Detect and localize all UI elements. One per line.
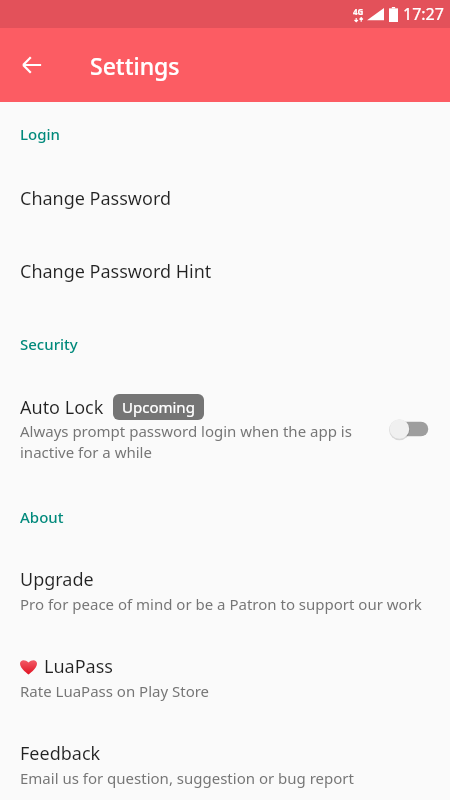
staticText: Change Password — [20, 186, 172, 211]
staticText: Upcoming — [122, 397, 195, 417]
staticText: Security — [20, 334, 78, 354]
staticText: Upgrade — [20, 567, 94, 592]
staticText: Settings — [90, 50, 180, 81]
staticText: Login — [20, 124, 60, 144]
staticText: Email us for question, suggestion or bug… — [20, 768, 354, 788]
button[interactable]: Change Password Hint — [0, 259, 450, 284]
staticText: LuaPass — [44, 654, 113, 679]
staticText: 17:27 — [403, 3, 444, 25]
button[interactable]: Feedback — [0, 741, 450, 788]
staticText: About — [20, 507, 64, 527]
button[interactable]: Change Password — [0, 186, 450, 211]
staticText: Pro for peace of mind or be a Patron to … — [20, 594, 422, 614]
staticText: Auto Lock — [20, 395, 104, 420]
staticText: Always prompt password login when the ap… — [20, 421, 378, 463]
button[interactable]: LuaPass — [0, 654, 450, 701]
button[interactable]: Upgrade — [0, 567, 450, 614]
staticText: Change Password Hint — [20, 259, 212, 284]
staticText: 4G — [353, 6, 364, 17]
button[interactable]: Auto Lock — [0, 394, 450, 463]
button[interactable]: Auto Lock toggle — [386, 415, 434, 443]
staticText: Rate LuaPass on Play Store — [20, 681, 210, 701]
button[interactable]: Back — [8, 41, 56, 89]
staticText: Feedback — [20, 741, 101, 766]
